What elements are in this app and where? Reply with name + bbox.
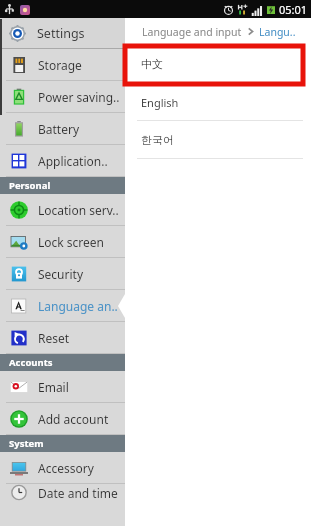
button[interactable]: Storage: [0, 49, 125, 81]
staticText: 05:01: [279, 2, 308, 17]
button[interactable]: English: [125, 83, 311, 121]
button[interactable]: Power saving..: [0, 81, 125, 113]
button[interactable]: Date and time: [0, 484, 125, 501]
staticText: Lock screen: [38, 234, 105, 250]
button[interactable]: Application..: [0, 145, 125, 177]
staticText: Location serv..: [38, 202, 119, 218]
button[interactable]: Language an..: [0, 290, 125, 322]
staticText: Email: [38, 379, 69, 395]
button[interactable]: Lock screen: [0, 226, 125, 258]
button[interactable]: Accessory: [0, 452, 125, 484]
button[interactable]: Security: [0, 258, 125, 290]
staticText: Personal: [9, 179, 51, 192]
staticText: Accounts: [9, 356, 53, 369]
staticText: Language an..: [38, 298, 118, 314]
staticText: Date and time: [38, 485, 118, 501]
button[interactable]: Location serv..: [0, 194, 125, 226]
staticText: 한국어: [141, 133, 174, 147]
button[interactable]: Add account: [0, 403, 125, 435]
button[interactable]: Email: [0, 371, 125, 403]
button[interactable]: Langu..: [259, 25, 296, 39]
staticText: Security: [38, 266, 84, 282]
button[interactable]: Language and input: [142, 25, 242, 39]
staticText: Reset: [38, 330, 70, 346]
staticText: English: [141, 95, 179, 110]
staticText: Power saving..: [38, 89, 120, 105]
button[interactable]: 中文: [125, 45, 311, 83]
button[interactable]: Battery: [0, 113, 125, 145]
staticText: Settings: [37, 25, 85, 42]
button[interactable]: Reset: [0, 322, 125, 354]
staticText: Add account: [38, 411, 109, 427]
staticText: 中文: [141, 57, 163, 71]
staticText: Application..: [38, 153, 108, 169]
other: Breadcrumb separator: [247, 28, 254, 35]
button[interactable]: 한국어: [125, 121, 311, 159]
staticText: Accessory: [38, 460, 94, 476]
staticText: Storage: [38, 57, 82, 73]
staticText: System: [9, 437, 44, 450]
staticText: Battery: [38, 121, 80, 137]
button[interactable]: Settings: [0, 18, 125, 48]
